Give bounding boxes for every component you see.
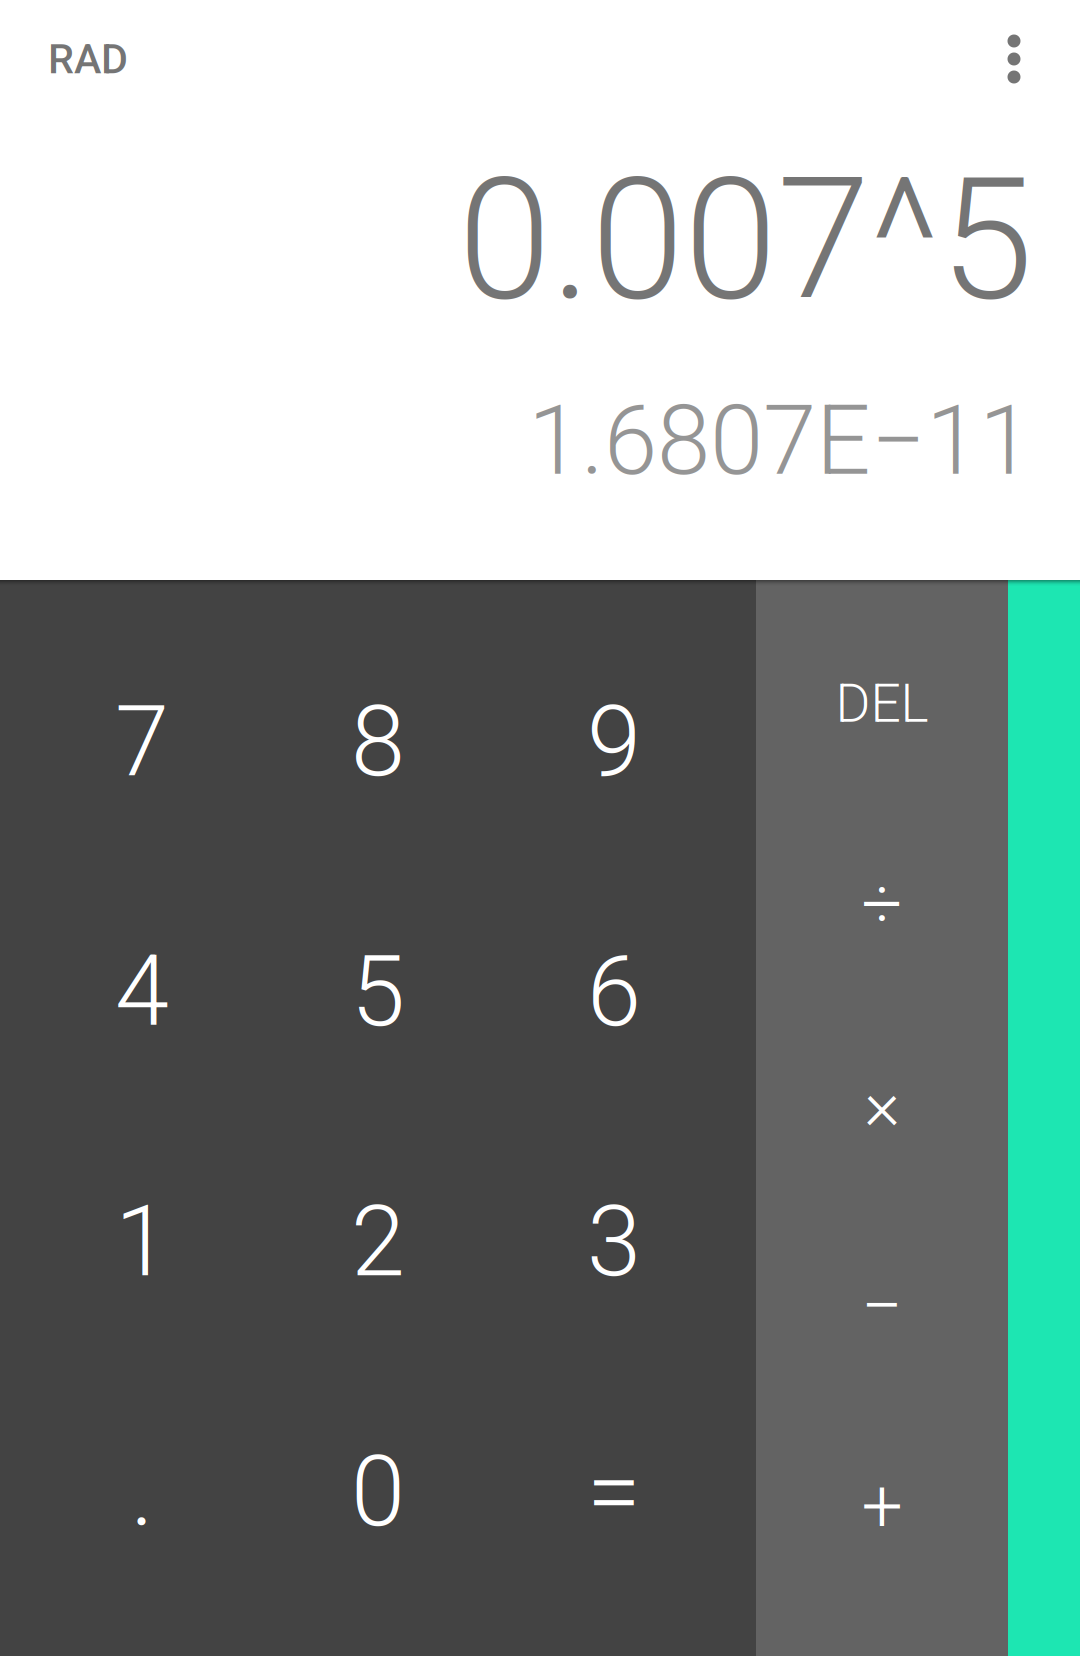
button[interactable]: 7 [0, 580, 252, 867]
button[interactable]: 2 [252, 1117, 504, 1367]
staticText: RAD [48, 35, 128, 83]
button[interactable]: Equals [504, 1367, 756, 1656]
staticText: 5 [351, 935, 405, 1049]
button[interactable]: 9 [504, 580, 756, 867]
staticText: 0.007^5 [458, 142, 1033, 338]
staticText: 3 [587, 1185, 641, 1299]
staticText: × [864, 1064, 900, 1146]
staticText: = [587, 1435, 641, 1549]
button[interactable]: More options [948, 0, 1080, 118]
button[interactable]: 0 [252, 1367, 504, 1656]
staticText: 7 [115, 685, 169, 799]
button[interactable]: Delete [756, 579, 1008, 803]
button[interactable]: Decimal point [0, 1367, 252, 1656]
button[interactable]: 8 [252, 580, 504, 867]
staticText: 1.6807E−11 [528, 385, 1032, 497]
button[interactable]: Add [756, 1405, 1008, 1656]
staticText: 1 [115, 1185, 169, 1299]
button[interactable]: 4 [0, 867, 252, 1117]
staticText: 8 [351, 685, 405, 799]
button[interactable]: 6 [504, 867, 756, 1117]
button[interactable]: Divide [756, 803, 1008, 1003]
staticText: 2 [351, 1185, 405, 1299]
button[interactable]: 1 [0, 1117, 252, 1367]
staticText: 0 [351, 1435, 405, 1549]
staticText: − [861, 1263, 903, 1349]
staticText: 6 [587, 935, 641, 1049]
staticText: DEL [835, 672, 928, 735]
button[interactable]: 5 [252, 867, 504, 1117]
button[interactable]: Subtract [756, 1206, 1008, 1405]
staticText: + [861, 1463, 902, 1549]
button[interactable]: 3 [504, 1117, 756, 1367]
staticText: 9 [587, 685, 641, 799]
staticText: . [130, 1435, 153, 1549]
staticText: 4 [115, 935, 169, 1049]
button[interactable]: RAD [0, 0, 156, 118]
button[interactable]: Multiply [756, 1003, 1008, 1206]
staticText: ÷ [861, 861, 902, 946]
